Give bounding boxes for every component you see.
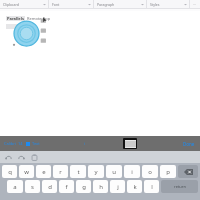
- button[interactable]: Backspace: [178, 165, 198, 178]
- staticText: Remote App: [27, 16, 51, 21]
- staticText: ···: [193, 2, 197, 7]
- staticText: s: [31, 183, 34, 191]
- button[interactable]: Undo: [5, 154, 12, 161]
- staticText: k: [133, 183, 137, 191]
- button[interactable]: Object: [40, 37, 47, 44]
- button[interactable]: w: [19, 165, 34, 178]
- staticText: return: [174, 184, 186, 189]
- staticText: e: [42, 168, 46, 176]
- button[interactable]: Parallels: [6, 16, 51, 21]
- button[interactable]: Paragraph: [94, 0, 146, 8]
- button[interactable]: h: [93, 180, 108, 193]
- button[interactable]: r: [53, 165, 68, 178]
- button[interactable]: Done: [183, 141, 195, 147]
- staticText: f: [65, 183, 68, 191]
- staticText: Clipboard: [3, 2, 19, 7]
- button[interactable]: i: [84, 141, 86, 146]
- staticText: g: [82, 183, 86, 191]
- staticText: h: [99, 183, 103, 191]
- button[interactable]: Paste: [31, 154, 38, 161]
- button[interactable]: g: [76, 180, 91, 193]
- button[interactable]: Redo: [18, 154, 25, 161]
- staticText: t: [77, 168, 80, 176]
- button[interactable]: Parallels logo: [14, 21, 39, 46]
- button[interactable]: p: [160, 165, 176, 178]
- button[interactable]: q: [2, 165, 17, 178]
- staticText: w: [24, 168, 29, 176]
- button[interactable]: Object: [40, 27, 47, 34]
- button[interactable]: k: [127, 180, 142, 193]
- button[interactable]: Font: [49, 0, 93, 8]
- staticText: Calibri 14: [4, 141, 23, 146]
- button[interactable]: y: [88, 165, 104, 178]
- button[interactable]: u: [106, 165, 122, 178]
- button[interactable]: o: [142, 165, 158, 178]
- staticText: a: [13, 183, 17, 191]
- button[interactable]: Clipboard: [0, 0, 48, 8]
- staticText: p: [166, 168, 170, 176]
- staticText: y: [94, 168, 98, 176]
- staticText: j: [117, 183, 119, 191]
- button[interactable]: return: [161, 180, 198, 193]
- button[interactable]: d: [42, 180, 57, 193]
- button[interactable]: s: [25, 180, 40, 193]
- staticText: r: [59, 168, 62, 176]
- staticText: l: [151, 183, 153, 191]
- staticText: Paragraph: [97, 2, 115, 7]
- button[interactable]: i: [124, 165, 140, 178]
- button[interactable]: j: [110, 180, 125, 193]
- staticText: u: [112, 168, 116, 176]
- button[interactable]: Hide keyboard: [123, 138, 137, 149]
- button[interactable]: f: [59, 180, 74, 193]
- button[interactable]: a: [7, 180, 23, 193]
- staticText: Styles: [150, 2, 160, 7]
- button[interactable]: Calibri 14: [4, 141, 40, 146]
- staticText: Text: [32, 141, 40, 146]
- staticText: q: [8, 168, 12, 176]
- button[interactable]: e: [36, 165, 51, 178]
- button[interactable]: Object: [40, 17, 47, 24]
- staticText: i: [131, 168, 133, 176]
- staticText: Font: [52, 2, 60, 7]
- button[interactable]: t: [70, 165, 86, 178]
- staticText: d: [48, 183, 52, 191]
- staticText: o: [148, 168, 152, 176]
- button[interactable]: l: [144, 180, 159, 193]
- button[interactable]: Styles: [147, 0, 189, 8]
- staticText: Parallels: [7, 16, 24, 21]
